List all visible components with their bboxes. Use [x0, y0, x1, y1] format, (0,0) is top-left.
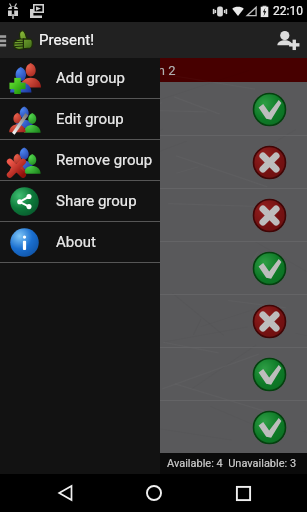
staticText: Present! [39, 31, 95, 49]
button[interactable]: Maria Wojcik [0, 242, 307, 294]
button[interactable]: Adam Kaminski [0, 295, 307, 347]
staticText: Share group [56, 192, 137, 210]
staticText: Remove group [56, 151, 153, 169]
button[interactable]: Add person [271, 24, 303, 56]
button[interactable]: About [0, 222, 160, 262]
button[interactable]: Alicja Kowalska [0, 83, 307, 135]
button[interactable]: Open navigation drawer [0, 26, 14, 54]
staticText: Available: 4 Unavailable: 3 [167, 457, 297, 470]
button[interactable]: Ewa Dabrowska [0, 348, 307, 400]
staticText: About [56, 233, 96, 251]
staticText: Piotr Lewandowski [10, 206, 252, 224]
button[interactable]: Edit group [0, 99, 160, 139]
staticText: Adam Kaminski [10, 312, 252, 330]
button[interactable]: Piotr Lewandowski [0, 189, 307, 241]
staticText: Alicja Kowalska [10, 100, 252, 118]
staticText: 22:10 [273, 4, 303, 18]
staticText: Ewa Dabrowska [10, 365, 252, 383]
staticText: Add group [56, 69, 126, 87]
button[interactable]: Tomasz Zielinski [0, 401, 307, 453]
staticText: Maria Wojcik [10, 259, 252, 277]
staticText: Lesson 2 [123, 63, 176, 78]
button[interactable]: Add group [0, 58, 160, 98]
staticText: Jan Nowak [10, 153, 252, 171]
button[interactable]: Back [38, 474, 92, 512]
button[interactable]: Recent apps [216, 474, 270, 512]
button[interactable]: Share group [0, 181, 160, 221]
button[interactable]: Home [127, 474, 181, 512]
staticText: Edit group [56, 110, 124, 128]
button[interactable]: Remove group [0, 140, 160, 180]
staticText: Tomasz Zielinski [10, 418, 252, 436]
button[interactable]: Jan Nowak [0, 136, 307, 188]
